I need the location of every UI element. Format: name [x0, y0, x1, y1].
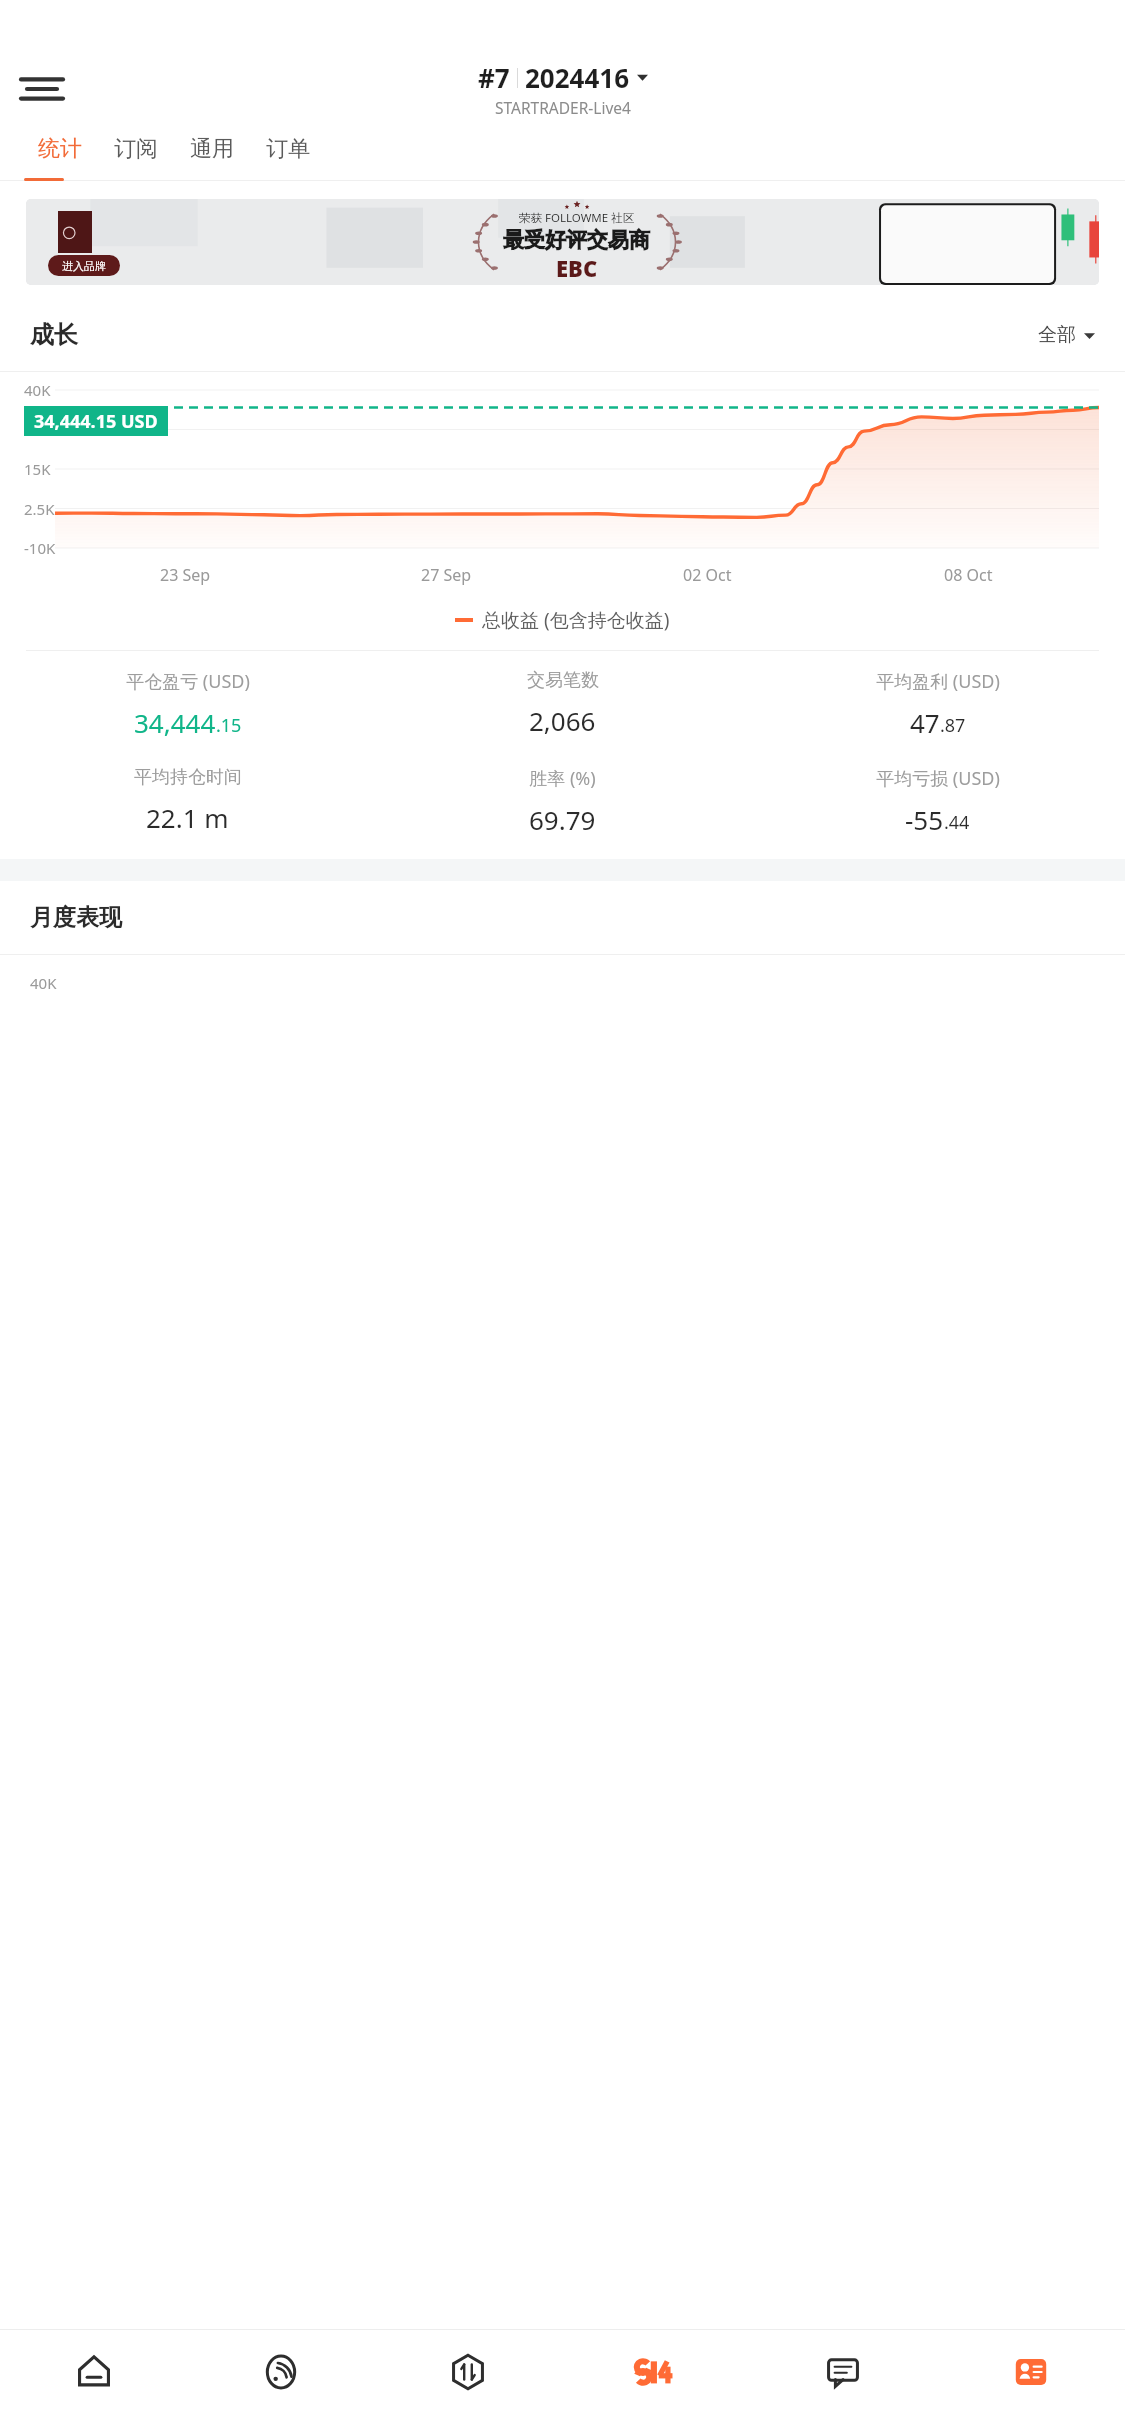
staticText: 订阅	[114, 135, 158, 163]
button[interactable]: Home	[0, 2330, 187, 2414]
staticText: 69.79	[529, 802, 596, 837]
staticText: 2.5K	[24, 499, 55, 519]
staticText: #7	[478, 60, 510, 95]
staticText: 进入品牌	[62, 259, 106, 273]
button[interactable]: Messages	[749, 2330, 937, 2414]
button[interactable]: S14	[561, 2330, 749, 2414]
button[interactable]: 进入品牌	[26, 199, 1099, 285]
staticText: 平均持仓时间	[134, 766, 242, 789]
staticText: 34,444.15 USD	[34, 409, 158, 434]
button[interactable]: Profile	[937, 2330, 1125, 2414]
staticText: .87	[940, 713, 966, 738]
staticText: 总收益 (包含持仓收益)	[482, 607, 670, 633]
staticText: 27 Sep	[421, 564, 472, 586]
staticText: -55	[905, 802, 944, 837]
button[interactable]: 平均盈利 (USD)	[750, 669, 1125, 740]
button[interactable]: 进入品牌	[48, 255, 120, 276]
staticText: 交易笔数	[527, 669, 599, 692]
button[interactable]: 平均亏损 (USD)	[750, 766, 1125, 837]
staticText: EBC	[556, 253, 598, 283]
staticText: 40K	[24, 380, 51, 400]
button[interactable]: #7	[478, 60, 648, 118]
button[interactable]: Menu	[18, 65, 66, 113]
button[interactable]: 订阅	[98, 120, 174, 178]
staticText: .44	[944, 810, 970, 835]
button[interactable]: 订单	[250, 120, 326, 178]
button[interactable]: 全部	[1038, 323, 1095, 347]
staticText: 荣获 FOLLOWME 社区	[519, 210, 635, 226]
button[interactable]: 通用	[174, 120, 250, 178]
staticText: 订单	[266, 135, 310, 163]
staticText: STARTRADER-Live4	[495, 97, 631, 118]
button[interactable]: Feed	[187, 2330, 374, 2414]
staticText: -10K	[24, 538, 56, 558]
staticText: 平仓盈亏 (USD)	[126, 669, 250, 694]
staticText: 02 Oct	[683, 564, 732, 586]
staticText: 成长	[30, 320, 78, 350]
staticText: 平均亏损 (USD)	[876, 766, 1000, 791]
staticText: 平均盈利 (USD)	[876, 669, 1000, 694]
staticText: 23 Sep	[160, 564, 211, 586]
staticText: 34,444	[134, 705, 216, 740]
staticText: 最受好评交易商	[503, 227, 650, 253]
staticText: 统计	[38, 135, 82, 163]
staticText: 2024416	[525, 60, 630, 95]
staticText: 胜率 (%)	[529, 766, 596, 791]
staticText: 08 Oct	[944, 564, 993, 586]
button[interactable]: 平均持仓时间	[0, 766, 375, 835]
staticText: 全部	[1038, 323, 1076, 347]
button[interactable]: Trade	[374, 2330, 561, 2414]
staticText: 40K	[30, 973, 57, 993]
staticText: 47	[910, 705, 940, 740]
button[interactable]: 平仓盈亏 (USD)	[0, 669, 375, 740]
button[interactable]: 交易笔数	[375, 669, 750, 738]
staticText: 月度表现	[30, 903, 122, 932]
button[interactable]: 胜率 (%)	[375, 766, 750, 837]
staticText: .15	[216, 713, 242, 738]
staticText: 22.1 m	[146, 800, 229, 835]
staticText: 2,066	[529, 703, 596, 738]
staticText: 15K	[24, 459, 51, 479]
staticText: 通用	[190, 135, 234, 163]
button[interactable]: 统计	[22, 120, 98, 178]
staticText: 27.5K	[24, 420, 64, 440]
